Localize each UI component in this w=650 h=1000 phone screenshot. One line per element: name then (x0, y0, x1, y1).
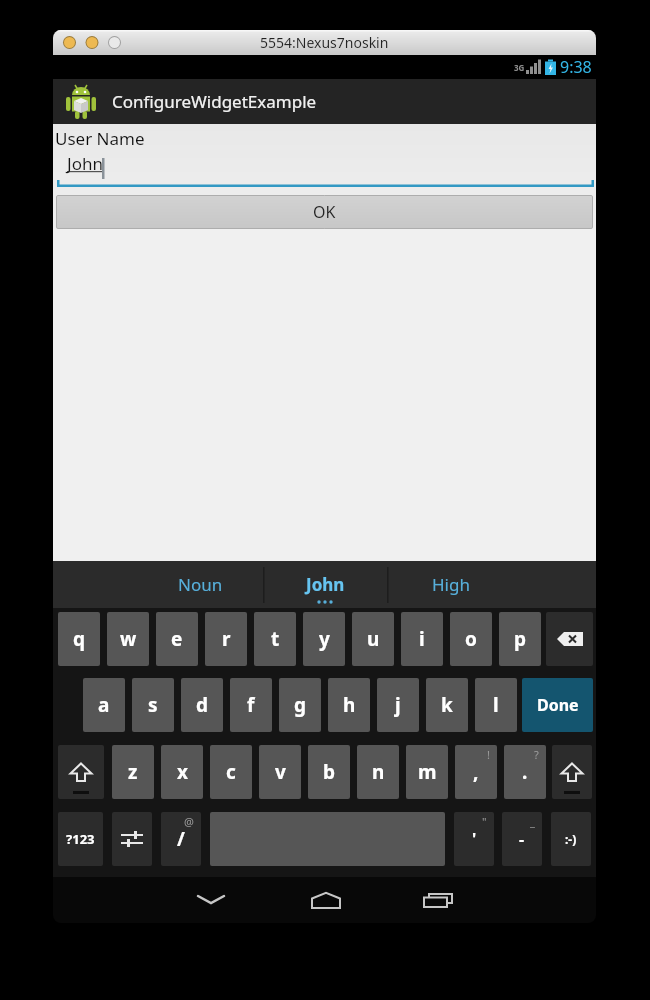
staticText: j (395, 692, 401, 718)
button[interactable]: d (181, 678, 223, 732)
staticText: s (148, 692, 158, 718)
button[interactable]: j (377, 678, 419, 732)
button[interactable]: . (504, 745, 546, 799)
button[interactable]: :-) (551, 812, 591, 866)
button[interactable]: e (156, 612, 198, 666)
staticText: 3G (514, 62, 525, 73)
staticText: e (171, 626, 183, 652)
button[interactable]: z (112, 745, 154, 799)
staticText: . (522, 759, 528, 785)
staticText: z (128, 759, 138, 785)
staticText: i (419, 626, 425, 652)
button[interactable]: x (161, 745, 203, 799)
staticText: w (120, 626, 137, 652)
staticText: y (319, 626, 330, 652)
staticText: h (343, 692, 356, 718)
staticText: Noun (178, 573, 223, 596)
button[interactable] (298, 877, 354, 923)
button[interactable]: o (450, 612, 492, 666)
staticText: a (98, 692, 110, 718)
staticText: c (226, 759, 236, 785)
staticText: x (177, 759, 188, 785)
staticText: u (367, 626, 380, 652)
staticText: John (306, 573, 345, 596)
staticText: ! (487, 747, 490, 762)
button[interactable]: f (230, 678, 272, 732)
button[interactable] (183, 877, 239, 923)
button[interactable]: Noun (145, 564, 255, 604)
staticText: g (294, 692, 307, 718)
staticText: ? (534, 747, 539, 762)
button[interactable]: / (161, 812, 201, 866)
staticText: m (418, 759, 437, 785)
staticText: High (432, 573, 470, 596)
button[interactable]: - (502, 812, 542, 866)
button[interactable] (58, 745, 104, 799)
button[interactable]: , (455, 745, 497, 799)
staticText: John (67, 152, 103, 175)
button[interactable]: s (132, 678, 174, 732)
staticText: , (473, 759, 479, 785)
staticText: Done (537, 694, 579, 716)
button[interactable]: q (58, 612, 100, 666)
staticText: ' (472, 828, 477, 850)
button[interactable]: ?123 (58, 812, 103, 866)
button[interactable]: OK (56, 195, 593, 229)
button[interactable]: l (475, 678, 517, 732)
staticText: ?123 (66, 830, 95, 848)
staticText: k (441, 692, 453, 718)
staticText: q (73, 626, 86, 652)
staticText: o (465, 626, 477, 652)
button[interactable]: b (308, 745, 350, 799)
button[interactable]: n (357, 745, 399, 799)
button[interactable]: y (303, 612, 345, 666)
staticText: " (482, 814, 487, 829)
staticText: t (271, 626, 280, 652)
staticText: :-) (565, 831, 577, 847)
staticText: OK (313, 201, 336, 223)
staticText: d (196, 692, 209, 718)
button[interactable]: h (328, 678, 370, 732)
button[interactable] (410, 877, 466, 923)
button[interactable] (112, 812, 152, 866)
button[interactable]: John (270, 564, 380, 604)
staticText: p (514, 626, 527, 652)
button[interactable]: ' (454, 812, 494, 866)
staticText: ConfigureWidgetExample (112, 90, 317, 113)
staticText: - (519, 828, 525, 850)
button[interactable]: r (205, 612, 247, 666)
button[interactable]: p (499, 612, 541, 666)
staticText: v (275, 759, 286, 785)
button[interactable]: a (83, 678, 125, 732)
staticText: r (222, 626, 231, 652)
staticText: @ (184, 814, 194, 829)
staticText: l (493, 692, 499, 718)
staticText: f (247, 692, 255, 718)
staticText: 5554:Nexus7noskin (260, 33, 389, 52)
button[interactable]: k (426, 678, 468, 732)
staticText: b (323, 759, 336, 785)
button[interactable] (546, 612, 593, 666)
button[interactable]: High (396, 564, 506, 604)
button[interactable] (552, 745, 592, 799)
button[interactable]: John (57, 152, 594, 188)
button[interactable]: t (254, 612, 296, 666)
staticText: User Name (55, 127, 145, 150)
staticText: 9:38 (560, 56, 592, 78)
staticText: / (177, 826, 185, 852)
button[interactable]: i (401, 612, 443, 666)
staticText: _ (530, 814, 535, 829)
button[interactable]: u (352, 612, 394, 666)
button[interactable]: m (406, 745, 448, 799)
button[interactable]: v (259, 745, 301, 799)
button[interactable]: g (279, 678, 321, 732)
button[interactable]: c (210, 745, 252, 799)
button[interactable]: Done (522, 678, 593, 732)
button[interactable]: w (107, 612, 149, 666)
staticText: n (372, 759, 385, 785)
